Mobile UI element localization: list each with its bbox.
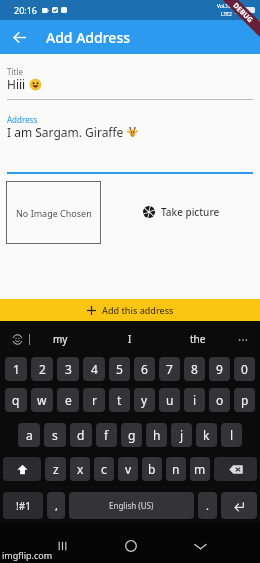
button[interactable]: p	[234, 388, 255, 412]
button[interactable]: I	[112, 327, 148, 351]
staticText: g	[128, 427, 136, 443]
button[interactable]: 9	[209, 357, 230, 381]
staticText: a	[26, 427, 33, 443]
staticText: l	[230, 427, 234, 443]
staticText: j	[180, 427, 184, 443]
button[interactable]: 0	[234, 357, 255, 381]
button[interactable]: q	[5, 388, 27, 412]
staticText: 6	[141, 361, 148, 377]
staticText: e	[65, 392, 72, 408]
button[interactable]: More suggestions	[234, 331, 251, 348]
button[interactable]: v	[118, 457, 138, 481]
button[interactable]: m	[190, 457, 210, 481]
staticText: h	[153, 427, 161, 443]
button[interactable]: 3	[57, 357, 79, 381]
staticText: VoLTE	[217, 3, 232, 10]
staticText: imgflip.com	[2, 549, 53, 561]
staticText: Hiii	[7, 76, 29, 92]
staticText: i	[193, 392, 197, 408]
staticText: 1	[13, 361, 20, 377]
staticText: t	[117, 392, 122, 408]
staticText: 3	[65, 361, 72, 377]
staticText: 5	[116, 361, 123, 377]
staticText: d	[77, 427, 85, 443]
button[interactable]: 5	[109, 357, 130, 381]
staticText: 7	[166, 361, 173, 377]
staticText: Add this address	[102, 304, 174, 316]
button[interactable]: 7	[159, 357, 180, 381]
button[interactable]: Back	[188, 534, 212, 558]
staticText: 20:16	[14, 4, 38, 16]
button[interactable]: z	[45, 457, 66, 481]
button[interactable]: 8	[184, 357, 205, 381]
button[interactable]: Backspace	[214, 457, 257, 481]
staticText: f	[104, 427, 109, 443]
staticText: Add Address	[46, 28, 130, 47]
button[interactable]: Back	[7, 25, 31, 49]
button[interactable]: o	[209, 388, 230, 412]
staticText: No Image Chosen	[16, 207, 92, 219]
staticText: I	[128, 332, 132, 346]
button[interactable]: .	[198, 492, 217, 519]
button[interactable]: w	[31, 388, 53, 412]
staticText: 8	[191, 361, 198, 377]
button[interactable]: d	[70, 423, 92, 447]
button[interactable]: English (US)	[69, 492, 194, 519]
staticText: 0	[241, 361, 248, 377]
button[interactable]: Recent apps	[50, 534, 74, 558]
staticText: z	[53, 461, 59, 477]
button[interactable]: Add this address	[0, 299, 260, 321]
staticText: o	[216, 392, 224, 408]
staticText: u	[166, 392, 174, 408]
button[interactable]: e	[57, 388, 79, 412]
button[interactable]: f	[96, 423, 117, 447]
button[interactable]: 6	[134, 357, 155, 381]
staticText: 4	[91, 361, 98, 377]
button[interactable]: 1	[5, 357, 27, 381]
button[interactable]: Shift	[3, 457, 41, 481]
button[interactable]: k	[196, 423, 217, 447]
staticText: my	[53, 332, 68, 346]
button[interactable]: t	[109, 388, 130, 412]
button[interactable]: c	[94, 457, 114, 481]
button[interactable]: u	[159, 388, 180, 412]
button[interactable]: Home	[119, 534, 143, 558]
button[interactable]: x	[70, 457, 90, 481]
button[interactable]: Enter	[221, 492, 257, 519]
staticText: s	[52, 427, 58, 443]
button[interactable]: y	[134, 388, 155, 412]
staticText: m	[194, 461, 206, 477]
button[interactable]: Take picture	[140, 203, 223, 221]
staticText: n	[172, 461, 180, 477]
staticText: LTE2	[221, 11, 232, 18]
button[interactable]: s	[44, 423, 66, 447]
button[interactable]: a	[18, 423, 40, 447]
button[interactable]: h	[146, 423, 167, 447]
button[interactable]: r	[83, 388, 105, 412]
staticText: w	[37, 392, 47, 408]
staticText: !#1	[16, 499, 31, 513]
button[interactable]: j	[171, 423, 192, 447]
button[interactable]: l	[221, 423, 242, 447]
button[interactable]: Emoji	[11, 333, 24, 346]
button[interactable]: ,	[47, 492, 65, 519]
button[interactable]: 2	[31, 357, 53, 381]
staticText: Address	[7, 114, 38, 125]
button[interactable]: the	[180, 327, 216, 351]
button[interactable]: my	[42, 327, 78, 351]
staticText: .	[206, 498, 209, 513]
staticText: English (US)	[109, 500, 154, 511]
button[interactable]: n	[166, 457, 186, 481]
button[interactable]: b	[142, 457, 162, 481]
staticText: r	[92, 392, 97, 408]
staticText: ,	[55, 498, 58, 513]
button[interactable]: g	[121, 423, 142, 447]
staticText: the	[190, 332, 206, 346]
button[interactable]: !#1	[3, 492, 43, 519]
button[interactable]: i	[184, 388, 205, 412]
staticText: DEBUG	[231, 1, 255, 25]
staticText: x	[77, 461, 84, 477]
staticText: p	[241, 392, 249, 408]
staticText: k	[203, 427, 210, 443]
button[interactable]: 4	[83, 357, 105, 381]
